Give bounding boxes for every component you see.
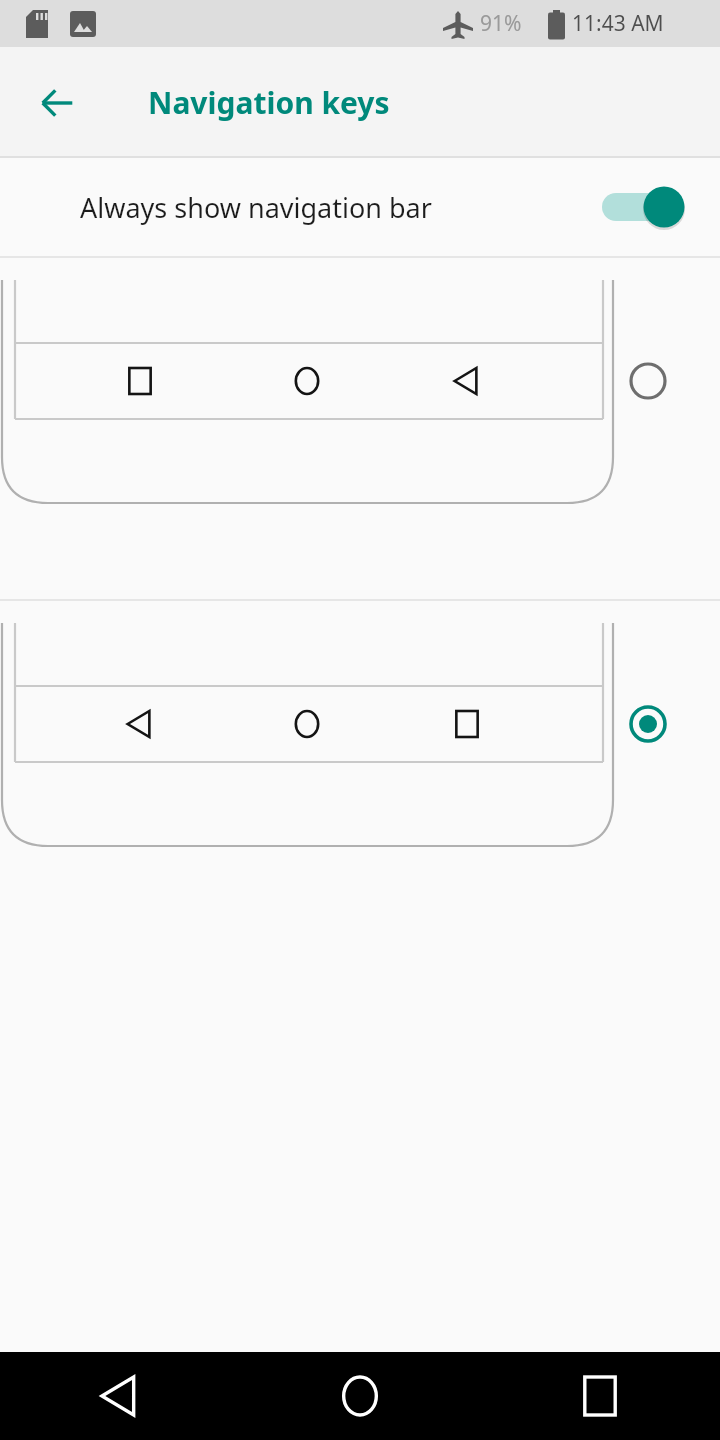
staticText: Navigation keys	[148, 82, 390, 123]
button[interactable]: Home	[240, 1352, 480, 1440]
button[interactable]: Standard navigation key order	[0, 601, 720, 942]
button[interactable]: Reversed navigation key order	[0, 258, 720, 599]
button[interactable]: Recents	[480, 1352, 720, 1440]
staticText: Always show navigation bar	[80, 189, 432, 226]
staticText: 11:43 AM	[572, 9, 664, 38]
button[interactable]: Always show navigation bar	[0, 158, 720, 256]
button[interactable]: Back	[0, 1352, 240, 1440]
button[interactable]: Back	[26, 72, 88, 134]
staticText: 91%	[480, 9, 522, 38]
